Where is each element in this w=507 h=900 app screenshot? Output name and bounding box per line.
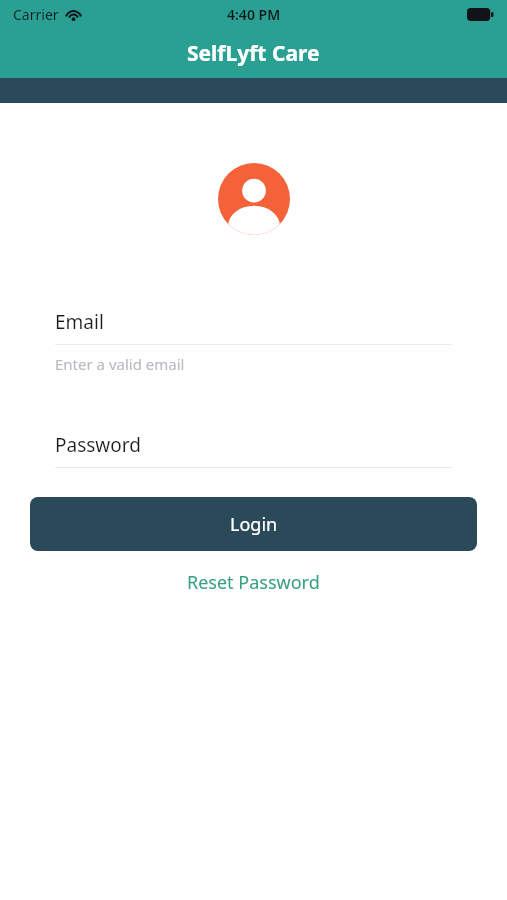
staticText: Carrier [13, 5, 59, 24]
other: Wi-Fi [65, 8, 82, 21]
staticText: Login [230, 512, 278, 537]
button[interactable]: Reset Password [175, 565, 332, 600]
staticText: SelfLyft Care [187, 39, 320, 68]
staticText: Email [55, 309, 104, 335]
other: Battery full [467, 8, 494, 21]
other: Profile avatar [218, 163, 290, 235]
staticText: Enter a valid email [55, 354, 185, 374]
button[interactable]: Login [30, 497, 477, 551]
staticText: 4:40 PM [227, 5, 281, 24]
button[interactable]: Password [0, 432, 507, 468]
staticText: Reset Password [187, 570, 320, 595]
button[interactable]: Email [0, 309, 507, 374]
staticText: Password [55, 432, 141, 458]
